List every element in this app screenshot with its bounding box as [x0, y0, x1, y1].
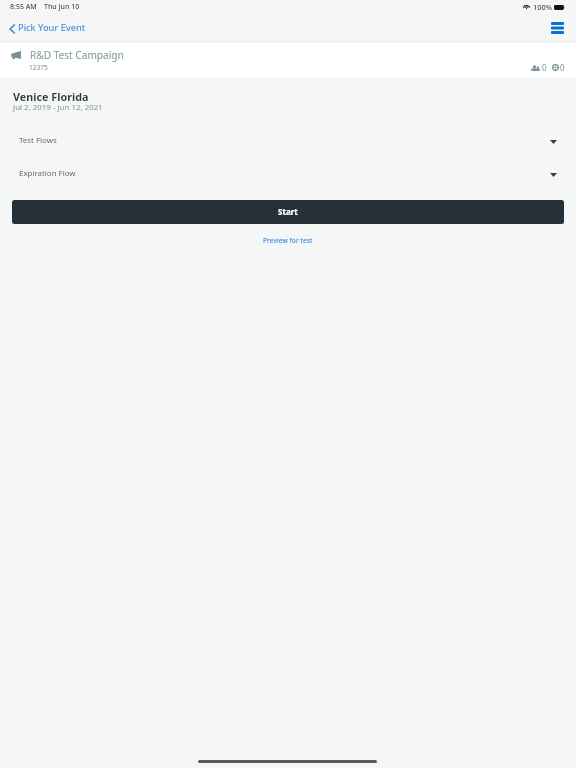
- button[interactable]: Preview for test: [256, 232, 320, 248]
- staticText: 0: [542, 62, 547, 73]
- staticText: Test Flows: [19, 135, 57, 146]
- staticText: 12375: [29, 63, 48, 72]
- staticText: R&D Test Campaign: [30, 48, 124, 62]
- button[interactable]: Expiration Flow: [0, 155, 576, 188]
- staticText: Jul 2, 2019 - Jun 12, 2021: [13, 102, 103, 113]
- staticText: 8:55 AM: [10, 2, 37, 12]
- staticText: 100%: [533, 2, 552, 12]
- staticText: Pick Your Event: [18, 21, 86, 34]
- staticText: Start: [278, 206, 298, 217]
- staticText: Venice Florida: [13, 89, 89, 104]
- staticText: Preview for test: [263, 236, 313, 245]
- button[interactable]: Start: [12, 200, 564, 224]
- button[interactable]: R&D Test Campaign: [0, 43, 576, 78]
- button[interactable]: Test Flows: [0, 122, 576, 155]
- staticText: Expiration Flow: [19, 168, 76, 179]
- staticText: Thu Jun 10: [44, 2, 80, 12]
- button[interactable]: Pick Your Event: [6, 19, 89, 38]
- button[interactable]: Menu: [545, 16, 569, 40]
- staticText: 0: [560, 62, 565, 73]
